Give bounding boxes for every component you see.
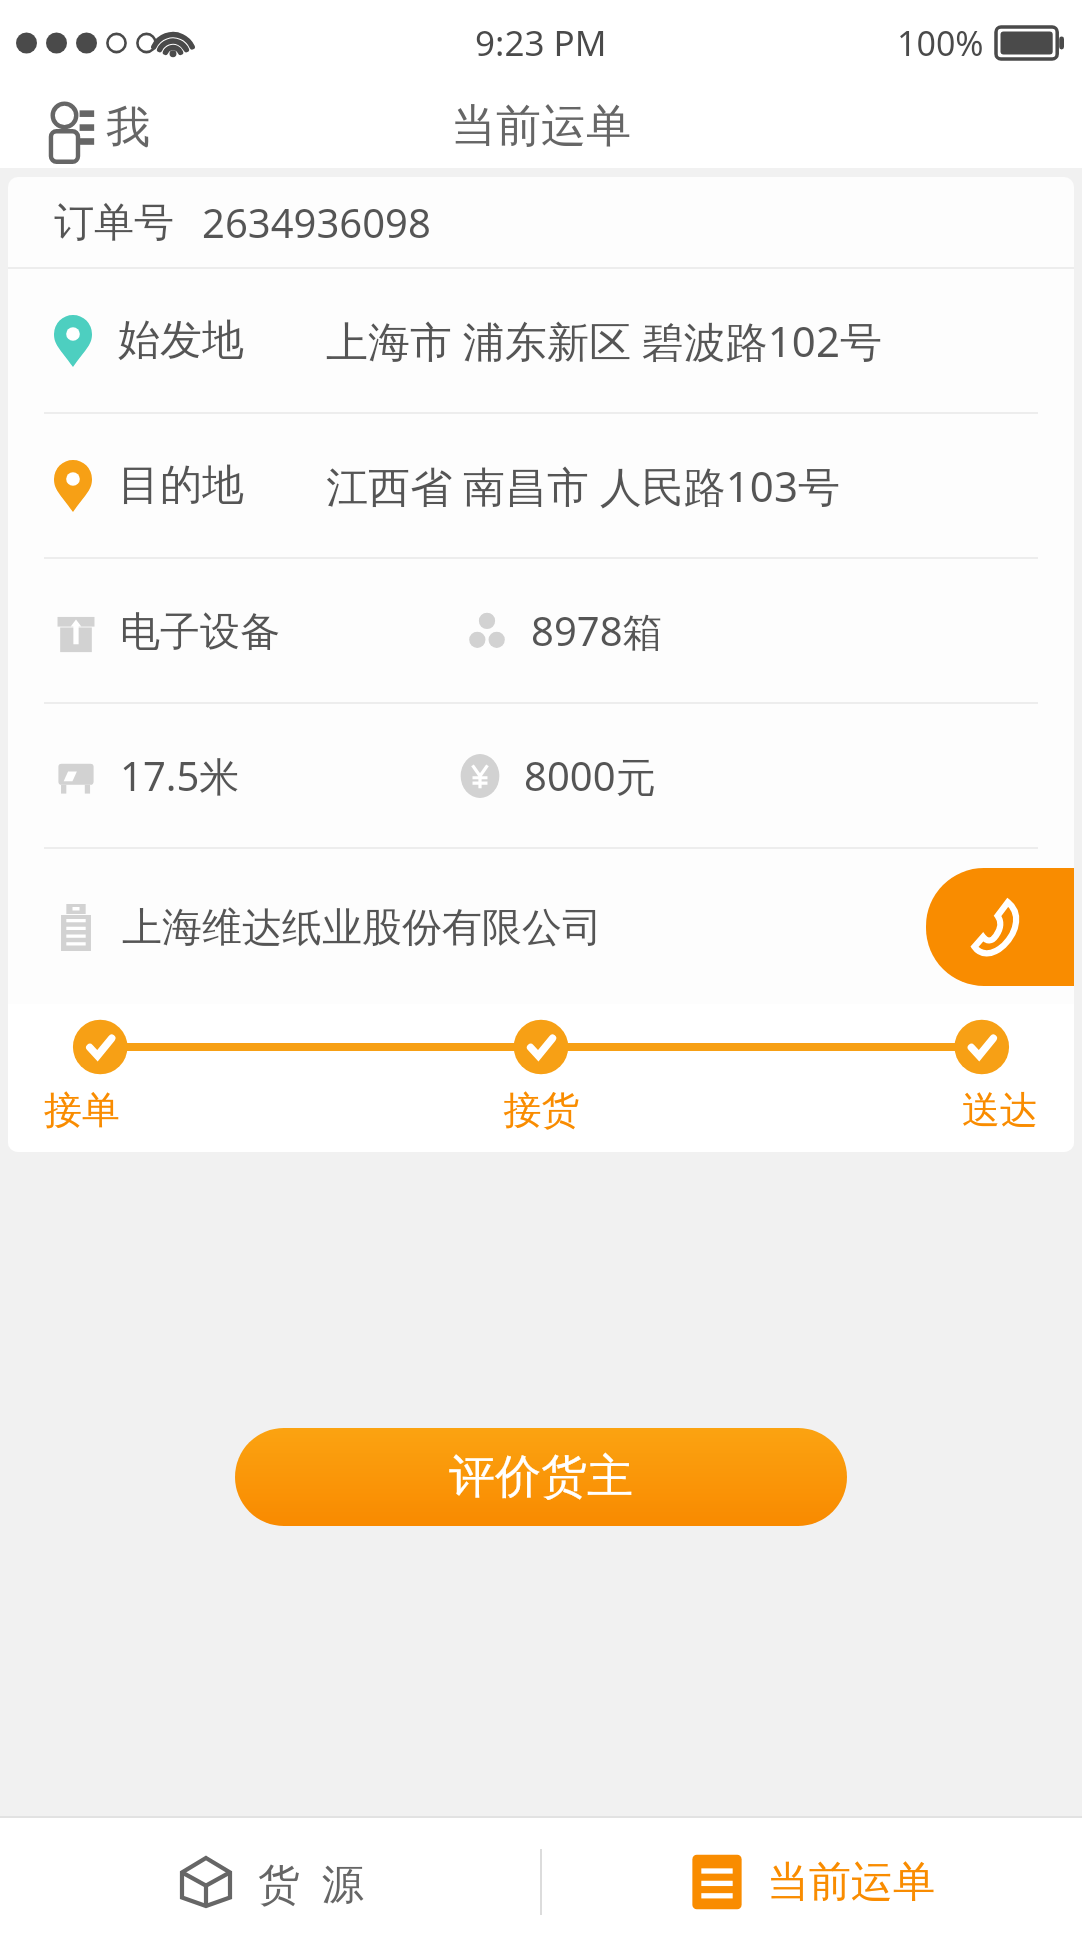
button[interactable]: 我 bbox=[40, 94, 156, 160]
staticText: 9:23 PM bbox=[475, 19, 607, 67]
staticText: 上海市 浦东新区 碧波路102号 bbox=[326, 312, 882, 369]
button[interactable]: 目的地 bbox=[8, 414, 1074, 557]
staticText: 17.5米 bbox=[120, 748, 240, 803]
staticText: 始发地 bbox=[118, 314, 244, 367]
staticText: 100% bbox=[897, 20, 984, 66]
staticText: 8978箱 bbox=[531, 603, 663, 658]
staticText: 订单号 bbox=[54, 197, 174, 247]
button[interactable]: 货 源 bbox=[0, 1818, 540, 1946]
button[interactable]: 订单号 bbox=[8, 177, 1074, 267]
staticText: 送达 bbox=[707, 1086, 1038, 1134]
staticText: 上海维达纸业股份有限公司 bbox=[122, 902, 602, 952]
staticText: 评价货主 bbox=[449, 1448, 633, 1506]
button[interactable]: 始发地 bbox=[8, 269, 1074, 412]
staticText: 我 bbox=[106, 100, 150, 155]
staticText: 8000元 bbox=[524, 748, 656, 803]
staticText: 电子设备 bbox=[120, 606, 280, 656]
staticText: 2634936098 bbox=[202, 195, 431, 249]
staticText: 江西省 南昌市 人民路103号 bbox=[326, 457, 840, 514]
staticText: 目的地 bbox=[118, 459, 244, 512]
button[interactable]: 电子设备 bbox=[8, 559, 1074, 702]
button[interactable]: 17.5米 bbox=[8, 704, 1074, 847]
staticText: 接货 bbox=[376, 1086, 707, 1134]
staticText: 当前运单 bbox=[767, 1856, 935, 1909]
button[interactable]: 拨打电话 bbox=[926, 868, 1074, 986]
button[interactable]: 评价货主 bbox=[235, 1428, 847, 1526]
staticText: 接单 bbox=[44, 1086, 376, 1134]
button[interactable]: 当前运单 bbox=[542, 1818, 1082, 1946]
staticText: 当前运单 bbox=[451, 98, 631, 155]
staticText: 货 源 bbox=[258, 1854, 364, 1911]
